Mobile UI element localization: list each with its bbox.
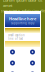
button[interactable]: Option one	[4, 48, 21, 56]
button[interactable]: Option three	[4, 59, 21, 67]
button[interactable]: Option five	[4, 70, 21, 72]
button[interactable]: Option two	[24, 48, 41, 56]
staticText: consectetur adipiscing elit	[0, 8, 44, 13]
staticText: Lorem ipsum dolor sit amet	[3, 0, 42, 8]
button[interactable]: Option six	[24, 70, 41, 72]
staticText: supporting copy	[11, 21, 34, 25]
staticText: small caption line of text	[8, 33, 25, 41]
button[interactable]: Option four	[24, 59, 41, 67]
staticText: Headline here	[9, 16, 36, 21]
